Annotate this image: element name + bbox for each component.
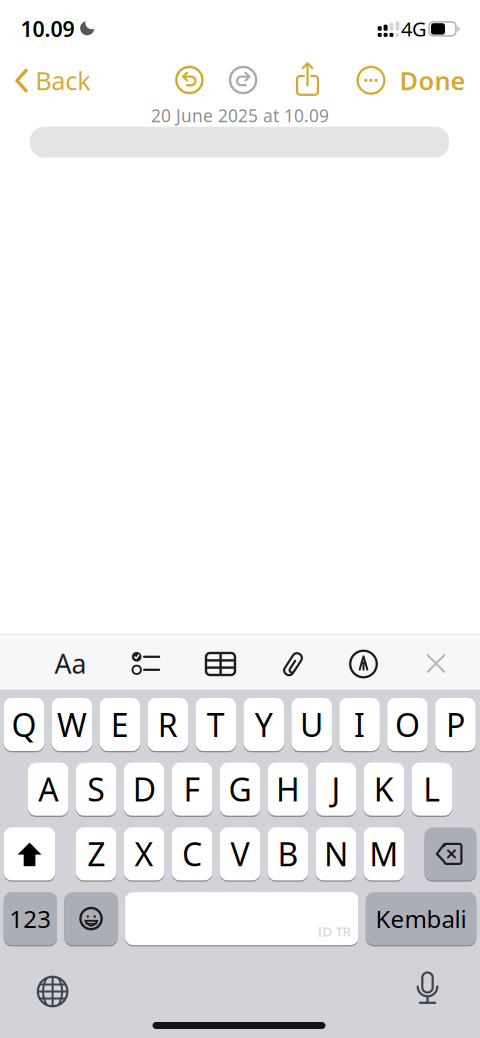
button[interactable]: Redo — [228, 65, 258, 95]
button[interactable]: E — [100, 698, 140, 751]
button[interactable]: Undo — [174, 65, 204, 95]
button[interactable]: D — [124, 763, 164, 816]
button[interactable]: B — [268, 827, 308, 880]
button[interactable]: O — [387, 698, 428, 751]
staticText: P — [446, 703, 465, 746]
staticText: 123 — [9, 903, 51, 935]
button[interactable]: Dictation — [414, 972, 440, 1008]
staticText: V — [230, 833, 249, 875]
button[interactable]: T — [195, 698, 236, 751]
staticText: W — [57, 703, 87, 746]
staticText: T — [207, 703, 225, 746]
button[interactable]: X — [124, 827, 164, 880]
staticText: 10.09 — [20, 15, 74, 43]
button[interactable]: Y — [243, 698, 284, 751]
button[interactable]: Share — [292, 61, 322, 95]
staticText: 20 June 2025 at 10.09 — [151, 104, 329, 127]
staticText: A — [38, 768, 58, 810]
staticText: O — [395, 703, 420, 746]
button[interactable]: U — [291, 698, 332, 751]
staticText: Kembali — [376, 903, 467, 935]
button[interactable]: M — [363, 827, 404, 880]
button[interactable]: C — [172, 827, 212, 880]
staticText: Y — [255, 703, 273, 746]
staticText: C — [182, 833, 202, 875]
staticText: G — [228, 768, 251, 810]
staticText: ID TR — [317, 922, 350, 940]
button[interactable]: W — [52, 698, 92, 751]
staticText: F — [184, 768, 201, 810]
button[interactable]: F — [172, 763, 212, 816]
button[interactable]: K — [363, 763, 404, 816]
staticText: K — [374, 768, 394, 810]
button[interactable]: Shift — [4, 827, 55, 880]
button[interactable]: Format — [54, 646, 86, 681]
staticText: J — [331, 768, 340, 810]
button[interactable]: Delete — [425, 827, 476, 880]
staticText: X — [135, 833, 154, 875]
staticText: N — [324, 833, 348, 875]
button[interactable]: L — [411, 763, 452, 816]
staticText: M — [369, 833, 398, 875]
button[interactable]: More — [356, 65, 386, 95]
button[interactable]: S — [76, 763, 116, 816]
button[interactable]: Z — [76, 827, 116, 880]
button[interactable]: Kembali — [366, 892, 476, 945]
button[interactable]: J — [316, 763, 356, 816]
staticText: L — [423, 768, 440, 810]
button[interactable]: H — [268, 763, 308, 816]
staticText: I — [354, 703, 365, 746]
staticText: Q — [11, 703, 36, 746]
button[interactable]: Q — [4, 698, 44, 751]
button[interactable]: 123 — [4, 892, 57, 945]
button[interactable]: G — [220, 763, 260, 816]
button[interactable]: Attach — [278, 649, 308, 679]
staticText: 4G — [401, 15, 427, 42]
staticText: U — [300, 703, 323, 746]
button[interactable]: Space — [125, 892, 358, 945]
button[interactable]: Table — [204, 651, 236, 677]
staticText: Aa — [54, 646, 86, 681]
button[interactable]: R — [147, 698, 188, 751]
staticText: H — [276, 768, 300, 810]
staticText: B — [277, 833, 298, 875]
staticText: Done — [399, 64, 465, 97]
button[interactable]: V — [220, 827, 260, 880]
staticText: R — [158, 703, 178, 746]
button[interactable]: N — [316, 827, 356, 880]
button[interactable]: Next keyboard — [36, 974, 70, 1008]
button[interactable]: I — [339, 698, 380, 751]
staticText: E — [111, 703, 129, 746]
button[interactable]: Dismiss keyboard — [424, 651, 448, 675]
button[interactable]: P — [435, 698, 476, 751]
button[interactable]: Markup — [348, 649, 378, 679]
button[interactable]: Done — [399, 64, 465, 97]
button[interactable]: Checklist — [130, 649, 160, 677]
button[interactable]: Emoji — [64, 892, 118, 945]
staticText: S — [87, 768, 105, 810]
staticText: Back — [35, 64, 91, 97]
button[interactable]: A — [28, 763, 69, 816]
staticText: Z — [87, 833, 105, 875]
button[interactable]: Back — [15, 64, 91, 97]
staticText: D — [133, 768, 156, 810]
